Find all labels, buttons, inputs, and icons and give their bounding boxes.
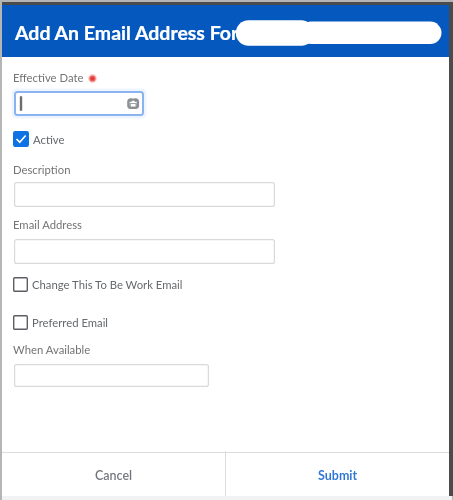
button[interactable]: Text field — [14, 182, 275, 207]
staticText: Email Address — [13, 218, 82, 232]
staticText: Active — [33, 133, 65, 147]
button[interactable]: Change This To Be Work Email — [13, 277, 179, 292]
staticText: Description — [13, 163, 71, 177]
staticText: Effective Date — [13, 71, 84, 85]
staticText: Cancel — [95, 468, 133, 483]
staticText: Submit — [318, 468, 358, 483]
button[interactable]: Text field — [14, 364, 209, 387]
button[interactable]: Preferred Email — [13, 315, 105, 330]
button[interactable]: Submit — [226, 451, 448, 496]
staticText: Add An Email Address For — [15, 21, 239, 44]
button[interactable]: Text field — [14, 91, 144, 116]
staticText: When Available — [13, 343, 91, 357]
button[interactable]: Cancel — [2, 451, 225, 496]
button[interactable]: Add An Email Address For — [2, 5, 449, 57]
button[interactable]: Text field — [14, 239, 275, 264]
staticText: Preferred Email — [32, 316, 109, 330]
staticText: Change This To Be Work Email — [32, 278, 183, 292]
button[interactable]: Active — [13, 131, 61, 147]
